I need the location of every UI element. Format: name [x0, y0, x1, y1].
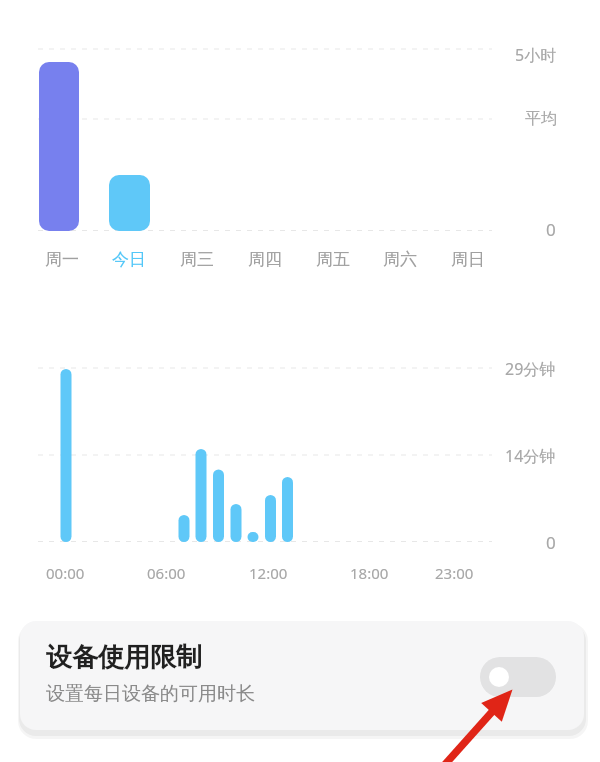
staticText: 今日 [112, 249, 146, 270]
staticText: 设置每日设备的可用时长 [46, 682, 255, 706]
button[interactable]: 今日 [97, 243, 161, 275]
staticText: 周三 [180, 249, 214, 270]
staticText: 设备使用限制 [46, 641, 202, 674]
staticText: 12:00 [249, 563, 288, 583]
staticText: 14分钟 [505, 445, 556, 467]
button[interactable]: 设备使用限制 [20, 621, 584, 730]
staticText: 00:00 [46, 563, 85, 583]
staticText: 0 [546, 531, 556, 554]
button[interactable]: 周日 [436, 243, 500, 275]
staticText: 5小时 [515, 44, 557, 66]
staticText: 周日 [451, 249, 485, 270]
button[interactable]: 周五 [301, 243, 365, 275]
staticText: 0 [546, 218, 556, 241]
button[interactable]: 周四 [233, 243, 297, 275]
staticText: 周四 [248, 249, 282, 270]
staticText: 18:00 [350, 563, 389, 583]
staticText: 周五 [316, 249, 350, 270]
staticText: 周一 [45, 249, 79, 270]
staticText: 06:00 [147, 563, 186, 583]
staticText: 平均 [525, 109, 557, 129]
staticText: 周六 [383, 249, 417, 270]
button[interactable]: 周三 [165, 243, 229, 275]
staticText: 23:00 [435, 563, 474, 583]
button[interactable]: 周一 [30, 243, 94, 275]
button[interactable] [480, 657, 556, 697]
button[interactable]: 周六 [368, 243, 432, 275]
staticText: 29分钟 [505, 358, 556, 380]
